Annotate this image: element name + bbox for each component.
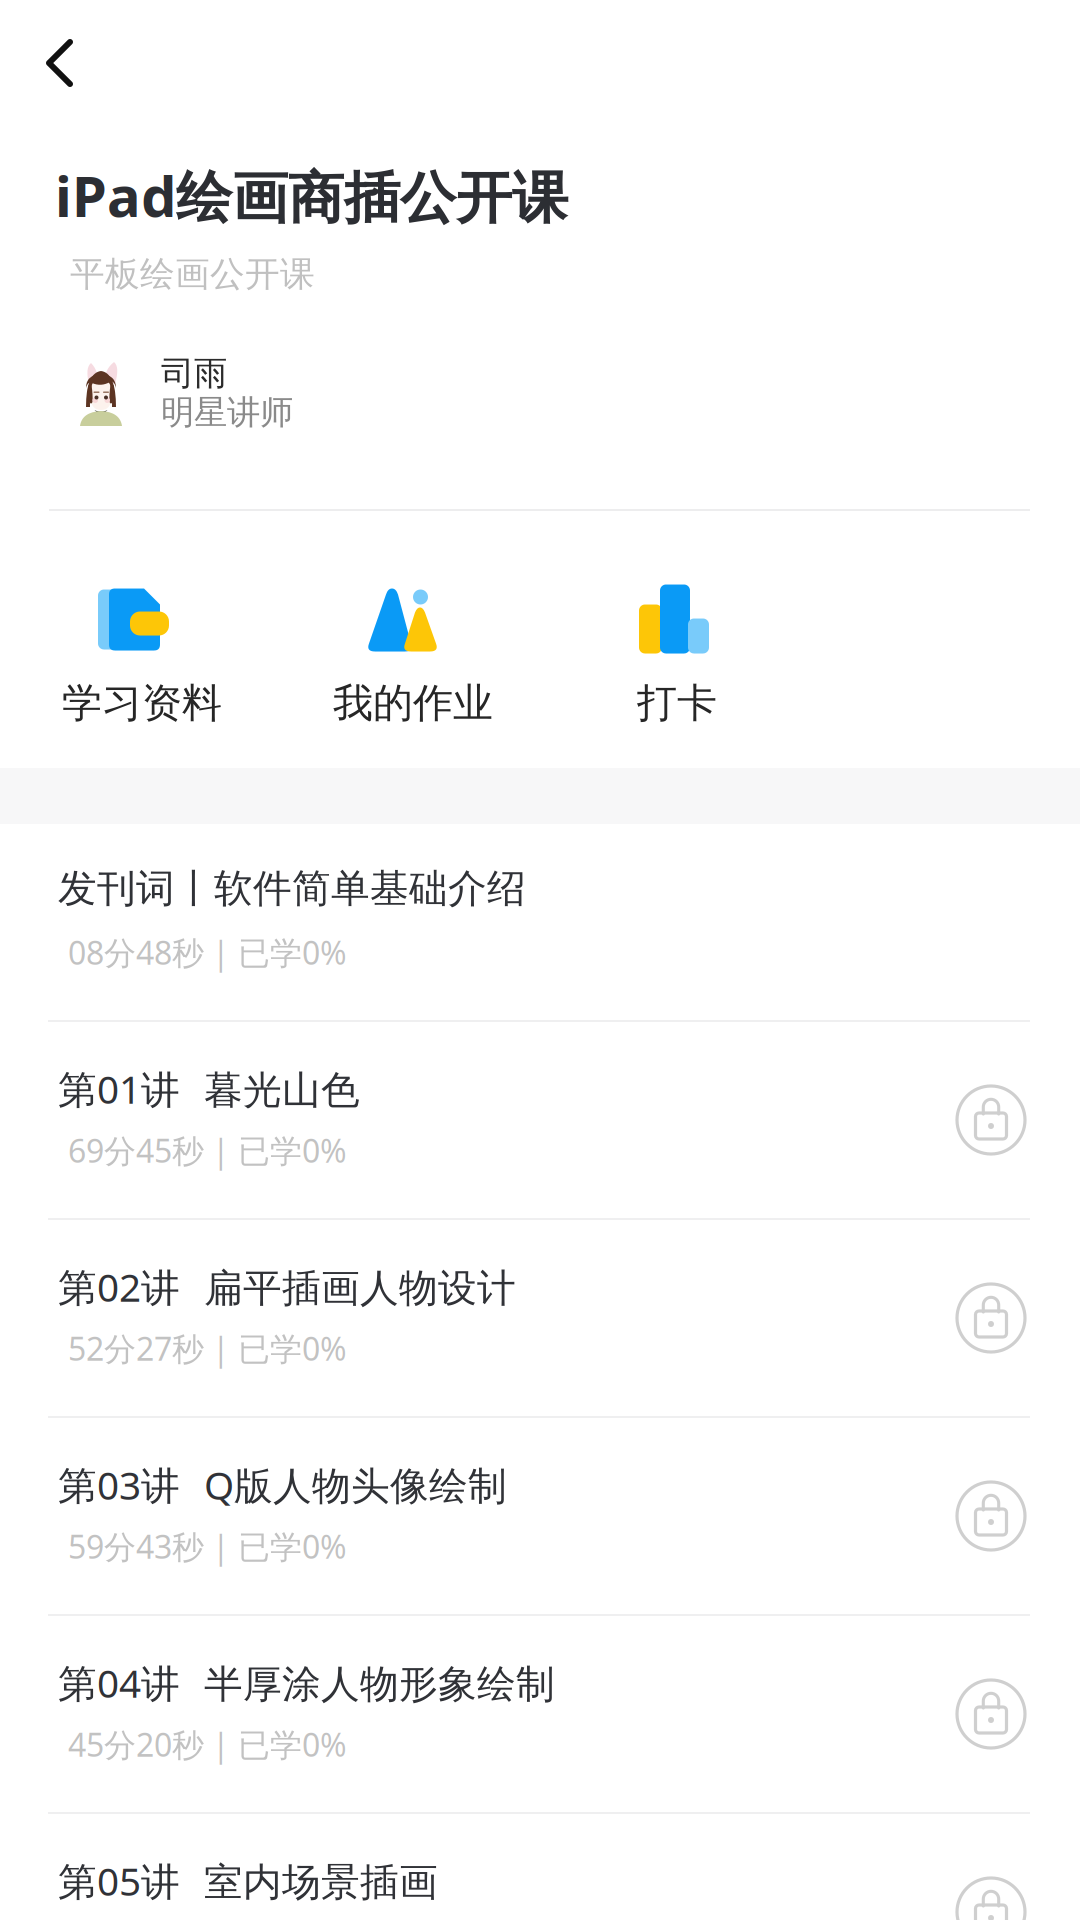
button[interactable]: 发刊词丨软件简单基础介绍	[0, 824, 1080, 1020]
staticText: 08分48秒 | 已学0%	[68, 931, 347, 973]
button[interactable]: 第05讲 室内场景插画	[0, 1814, 1080, 1920]
button[interactable]: 司雨	[67, 348, 497, 440]
staticText: 司雨	[161, 353, 227, 394]
staticText: 45分20秒 | 已学0%	[68, 1723, 347, 1765]
button[interactable]: 第02讲 扁平插画人物设计	[0, 1220, 1080, 1416]
button[interactable]: Back	[18, 15, 118, 111]
staticText: 第02讲 扁平插画人物设计	[58, 1261, 516, 1312]
staticText: 发刊词丨软件简单基础介绍	[58, 865, 526, 912]
staticText: 第04讲 半厚涂人物形象绘制	[58, 1657, 555, 1708]
staticText: 59分43秒 | 已学0%	[68, 1525, 347, 1567]
staticText: 学习资料	[62, 678, 222, 728]
button[interactable]: 学习资料	[33, 580, 233, 725]
staticText: 平板绘画公开课	[70, 253, 315, 296]
staticText: iPad绘画商插公开课	[55, 158, 568, 233]
staticText: 第03讲 Q版人物头像绘制	[58, 1459, 507, 1510]
button[interactable]: 我的作业	[303, 580, 503, 725]
button[interactable]: 打卡	[572, 580, 772, 725]
staticText: 我的作业	[333, 678, 493, 728]
staticText: 打卡	[637, 678, 717, 728]
staticText: 52分27秒 | 已学0%	[68, 1327, 347, 1369]
staticText: 第01讲 暮光山色	[58, 1063, 360, 1114]
button[interactable]: 第01讲 暮光山色	[0, 1022, 1080, 1218]
staticText: 明星讲师	[161, 392, 293, 433]
button[interactable]: 第04讲 半厚涂人物形象绘制	[0, 1616, 1080, 1812]
staticText: 69分45秒 | 已学0%	[68, 1129, 347, 1171]
staticText: 第05讲 室内场景插画	[58, 1855, 438, 1906]
button[interactable]: 第03讲 Q版人物头像绘制	[0, 1418, 1080, 1614]
